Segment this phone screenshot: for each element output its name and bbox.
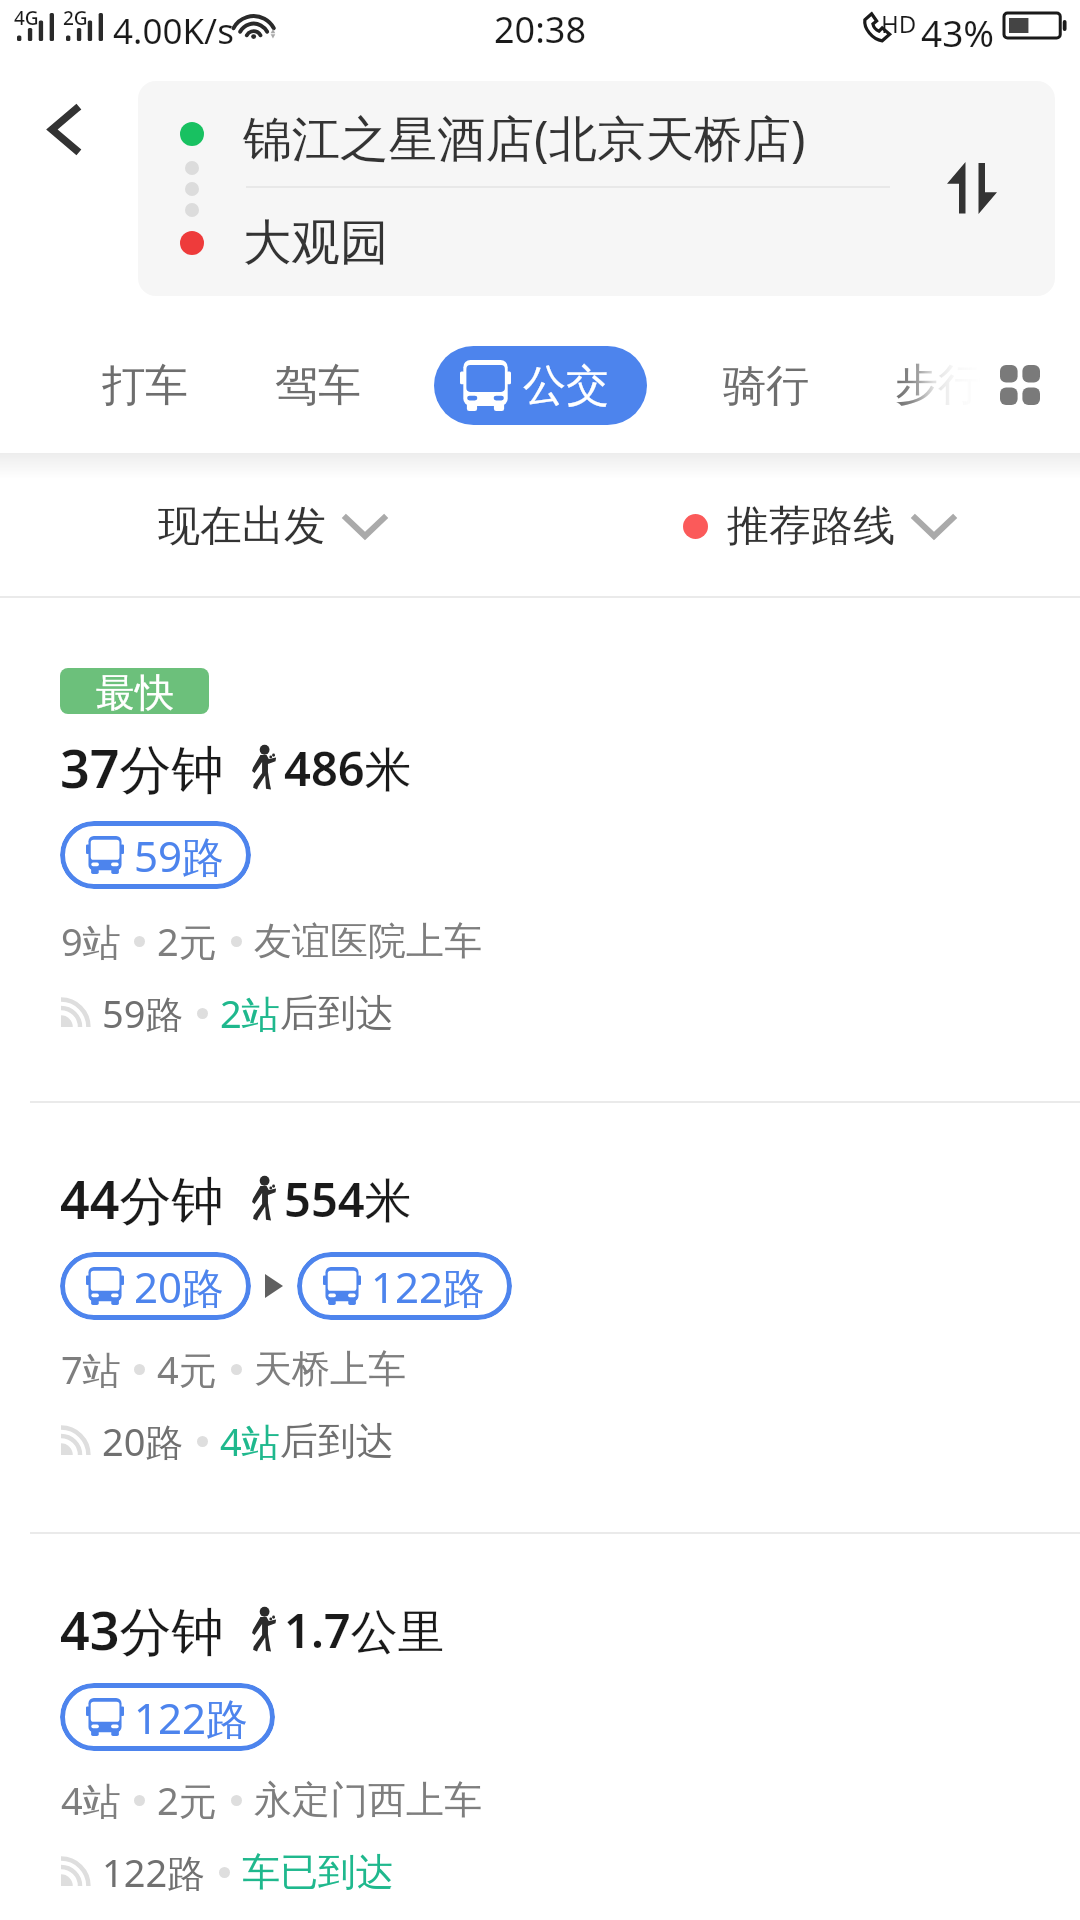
staticText: 20路 (102, 1415, 184, 1467)
staticText: 最快 (96, 668, 174, 714)
staticText: 骑行 (723, 359, 809, 413)
staticText: 122路 (102, 1846, 206, 1898)
button[interactable]: 驾车 (255, 346, 381, 425)
button[interactable]: Back (28, 93, 100, 165)
staticText: 锦江之星酒店(北京天桥店) (243, 104, 806, 170)
staticText: 2元 (157, 1774, 217, 1826)
staticText: 车已到达 (242, 1848, 394, 1896)
staticText: 打车 (102, 359, 188, 413)
button[interactable]: 推荐路线 (665, 486, 971, 567)
staticText: HD (881, 7, 917, 40)
staticText: 1.7公里 (284, 1598, 445, 1662)
staticText: 现在出发 (158, 500, 326, 553)
button[interactable]: 公交 (434, 346, 647, 425)
button[interactable]: 44分钟 (0, 1104, 1080, 1532)
staticText: 4.00K/s (113, 7, 234, 55)
staticText: 大观园 (243, 212, 389, 273)
staticText: 59路 (134, 827, 225, 884)
button[interactable]: 现在出发 (140, 486, 402, 567)
staticText: 9站 (61, 915, 121, 967)
button[interactable]: 43分钟 (0, 1535, 1080, 1920)
button[interactable]: More travel modes (1000, 365, 1040, 405)
staticText: 天桥上车 (254, 1345, 406, 1393)
staticText: 驾车 (275, 359, 361, 413)
staticText: 公交 (523, 359, 609, 413)
staticText: 44分钟 (60, 1163, 224, 1234)
staticText: 20路 (134, 1258, 225, 1315)
staticText: 122路 (371, 1258, 486, 1315)
staticText: 37分钟 (60, 732, 224, 803)
staticText: 2站 (220, 987, 280, 1039)
staticText: 7站 (61, 1343, 121, 1395)
staticText: 4G (14, 5, 39, 31)
staticText: 59路 (102, 987, 184, 1039)
staticText: 推荐路线 (727, 500, 895, 553)
staticText: 2G (63, 5, 88, 31)
staticText: 2元 (157, 915, 217, 967)
staticText: 43% (921, 7, 995, 57)
staticText: 4站 (220, 1415, 280, 1467)
staticText: 20:38 (494, 5, 587, 54)
staticText: 永定门西上车 (254, 1776, 482, 1824)
staticText: 122路 (134, 1689, 249, 1746)
staticText: 554米 (284, 1167, 412, 1231)
button[interactable]: Swap origin and destination (920, 136, 1024, 240)
staticText: 后到达 (280, 1417, 394, 1465)
staticText: 4元 (157, 1343, 217, 1395)
staticText: 4站 (61, 1774, 121, 1826)
button[interactable]: 骑行 (703, 346, 829, 425)
staticText: 486米 (284, 736, 412, 800)
button[interactable]: 锦江之星酒店(北京天桥店) (138, 81, 1055, 296)
button[interactable]: 打车 (82, 346, 208, 425)
staticText: 友谊医院上车 (254, 917, 482, 965)
staticText: 43分钟 (60, 1594, 224, 1665)
staticText: 后到达 (280, 989, 394, 1037)
button[interactable]: 最快 (0, 596, 1080, 1101)
button[interactable]: 步行 (895, 358, 981, 412)
